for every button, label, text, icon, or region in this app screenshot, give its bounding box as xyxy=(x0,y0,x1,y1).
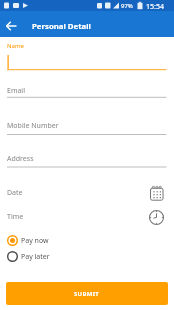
button[interactable]: Mobile Number xyxy=(0,119,174,137)
staticText: Address xyxy=(7,154,34,164)
staticText: 15:54 xyxy=(146,2,164,12)
staticText: Pay now xyxy=(21,236,49,246)
button[interactable]: Email xyxy=(0,84,174,102)
button[interactable]: SUBMIT xyxy=(6,282,168,305)
staticText: 97% xyxy=(121,2,133,10)
staticText: Mobile Number xyxy=(7,121,59,131)
staticText: Personal Detail xyxy=(32,21,91,32)
staticText: Date xyxy=(7,188,23,198)
button[interactable] xyxy=(0,13,22,39)
staticText: Name xyxy=(7,42,24,50)
staticText: Pay later xyxy=(21,252,50,262)
button[interactable]: Pay now xyxy=(5,233,49,248)
button[interactable]: Date xyxy=(0,186,174,201)
button[interactable]: Pay later xyxy=(5,249,50,264)
staticText: Email xyxy=(7,86,25,96)
button[interactable]: Address xyxy=(0,152,174,170)
button[interactable]: Time xyxy=(0,209,174,226)
staticText: Time xyxy=(7,212,24,222)
staticText: SUBMIT xyxy=(74,290,100,298)
button[interactable]: Name xyxy=(0,40,174,71)
